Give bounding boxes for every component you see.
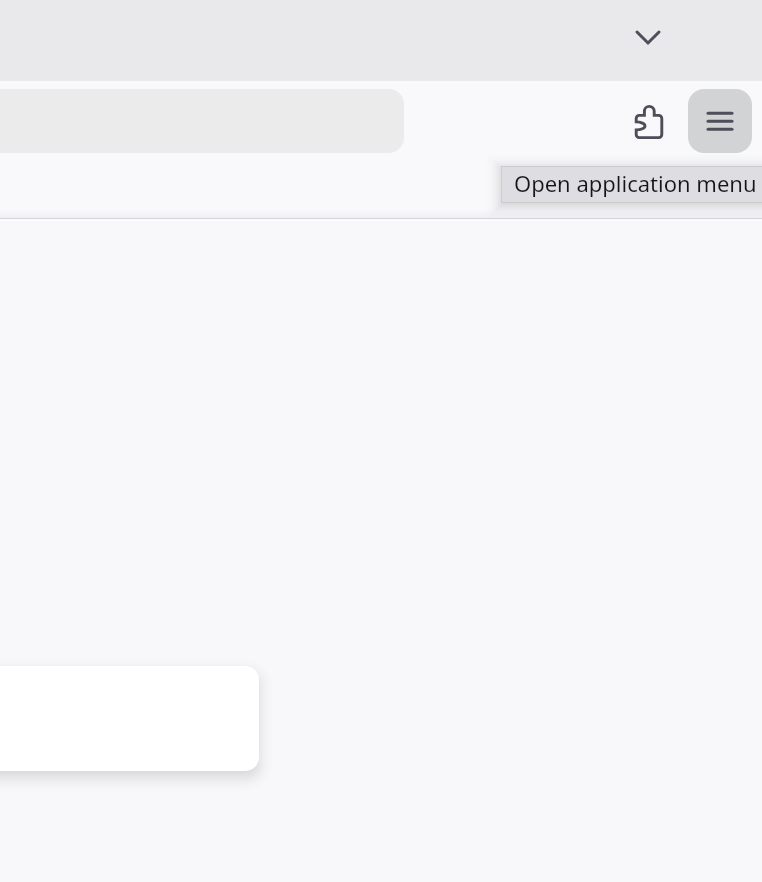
button[interactable]: List all tabs — [624, 13, 672, 61]
button[interactable]: Open application menu — [688, 89, 752, 153]
button[interactable]: Extensions — [625, 98, 673, 146]
staticText: Open application menu — [514, 168, 757, 198]
